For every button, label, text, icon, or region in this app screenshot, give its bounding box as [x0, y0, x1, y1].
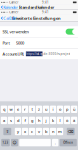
button[interactable]: s: [8, 117, 14, 124]
staticText: v: [38, 129, 40, 134]
staticText: Account-URL: [2, 51, 24, 56]
button[interactable]: p: [64, 106, 70, 113]
staticText: .de:3000/rs.project: [42, 52, 70, 56]
staticText: Erweiterte Einstellungen: [12, 15, 61, 21]
staticText: u: [45, 107, 47, 112]
button[interactable]: ü: [71, 106, 77, 113]
button[interactable]: k: [50, 117, 56, 124]
button[interactable]: q: [1, 106, 7, 113]
button[interactable]: g: [29, 117, 35, 124]
button[interactable]: e: [15, 106, 21, 113]
button[interactable]: .: [52, 139, 58, 146]
staticText: SSL verwenden: [2, 29, 28, 34]
button[interactable]: Öffnen: [60, 139, 77, 146]
staticText: e: [17, 107, 19, 112]
staticText: x: [24, 129, 26, 134]
staticText: o: [59, 107, 61, 112]
button[interactable]: t: [29, 106, 35, 113]
staticText: s: [10, 118, 12, 123]
staticText: ⌫: [68, 129, 74, 134]
button[interactable]: CalDAV: [0, 15, 16, 21]
staticText: ☺: [13, 140, 17, 145]
button[interactable]: b: [43, 128, 49, 135]
staticText: d: [17, 118, 19, 123]
button[interactable]: ☺: [11, 139, 18, 146]
button[interactable]: ⇧: [3, 128, 11, 135]
staticText: 5000: [16, 40, 24, 45]
button[interactable]: x: [22, 128, 28, 135]
staticText: ö: [66, 118, 68, 123]
staticText: k: [52, 118, 54, 123]
staticText: 9:41: [42, 10, 49, 14]
staticText: n: [52, 129, 54, 134]
button[interactable]: j: [43, 117, 49, 124]
staticText: h: [38, 118, 40, 123]
staticText: ü: [73, 107, 75, 112]
staticText: l: [60, 118, 61, 123]
staticText: w: [9, 107, 12, 112]
button[interactable]: 123: [1, 139, 10, 146]
staticText: Standardkalender: [18, 4, 54, 10]
staticText: https://cal.xy: [26, 52, 42, 56]
staticText: Kalender: [3, 4, 18, 10]
staticText: ä: [73, 118, 75, 123]
button[interactable]: d: [15, 117, 21, 124]
staticText: c: [31, 129, 33, 134]
button[interactable]: ⌫: [67, 128, 75, 135]
staticText: a: [3, 118, 5, 123]
staticText: .: [55, 140, 56, 145]
button[interactable]: ö: [64, 117, 70, 124]
staticText: q: [3, 107, 5, 112]
staticText: p: [66, 107, 68, 112]
staticText: m: [58, 129, 62, 134]
button[interactable]: r: [22, 106, 28, 113]
button[interactable]: o: [57, 106, 63, 113]
staticText: 9:41: [42, 1, 49, 4]
button[interactable]: a: [1, 117, 7, 124]
button[interactable]: h: [36, 117, 42, 124]
button[interactable]: n: [50, 128, 56, 135]
button[interactable]: c: [29, 128, 35, 135]
button[interactable]: u: [43, 106, 49, 113]
staticText: f: [24, 118, 25, 123]
staticText: Öffnen: [63, 141, 73, 144]
button[interactable]: Kalender: [0, 4, 18, 10]
button[interactable]: y: [15, 128, 21, 135]
button[interactable]: l: [57, 117, 63, 124]
staticText: Carrier: [9, 1, 18, 4]
staticText: b: [45, 129, 47, 134]
button[interactable]: w: [8, 106, 14, 113]
button[interactable]: ä: [71, 117, 77, 124]
staticText: y: [17, 129, 19, 134]
staticText: Carrier: [9, 10, 18, 14]
staticText: ⇧: [6, 129, 9, 134]
staticText: r: [24, 107, 26, 112]
button[interactable]: m: [57, 128, 63, 135]
staticText: CalDAV: [3, 15, 16, 21]
staticText: Port: [2, 40, 9, 45]
button[interactable]: f: [22, 117, 28, 124]
button[interactable]: v: [36, 128, 42, 135]
staticText: i: [52, 107, 53, 112]
staticText: g: [31, 118, 33, 123]
staticText: 123: [2, 141, 8, 144]
staticText: z: [38, 107, 40, 112]
button[interactable]: z: [36, 106, 42, 113]
button[interactable]: i: [50, 106, 56, 113]
